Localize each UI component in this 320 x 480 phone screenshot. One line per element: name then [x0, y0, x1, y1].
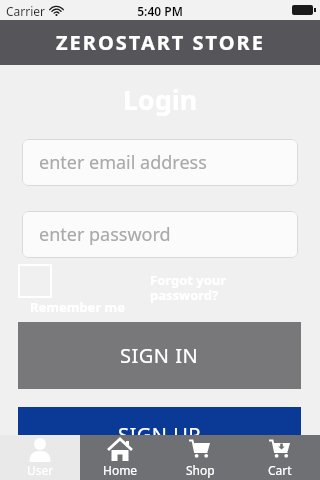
- staticText: Carrier: [6, 3, 46, 19]
- button[interactable]: Forgot your password?: [150, 271, 227, 304]
- staticText: User: [27, 462, 54, 478]
- button[interactable]: SIGN IN: [18, 322, 301, 389]
- staticText: ZEROSTART STORE: [56, 29, 265, 56]
- button[interactable]: Remember me: [30, 298, 126, 316]
- staticText: Shop: [186, 462, 215, 478]
- staticText: enter password: [39, 222, 171, 247]
- staticText: SIGN IN: [120, 342, 199, 369]
- button[interactable]: Home: [80, 435, 160, 480]
- button[interactable]: [18, 264, 52, 298]
- button[interactable]: Shop: [160, 435, 240, 480]
- button[interactable]: Cart: [240, 435, 320, 480]
- button[interactable]: enter password: [22, 211, 298, 258]
- staticText: SIGN UP: [118, 421, 201, 448]
- button[interactable]: enter email address: [22, 139, 298, 186]
- button[interactable]: SIGN UP: [18, 407, 301, 458]
- staticText: Cart: [268, 462, 292, 478]
- staticText: Login: [0, 81, 320, 118]
- button[interactable]: User: [0, 435, 80, 480]
- staticText: enter email address: [39, 150, 207, 175]
- staticText: 5:40 PM: [0, 3, 320, 19]
- staticText: Home: [103, 462, 138, 478]
